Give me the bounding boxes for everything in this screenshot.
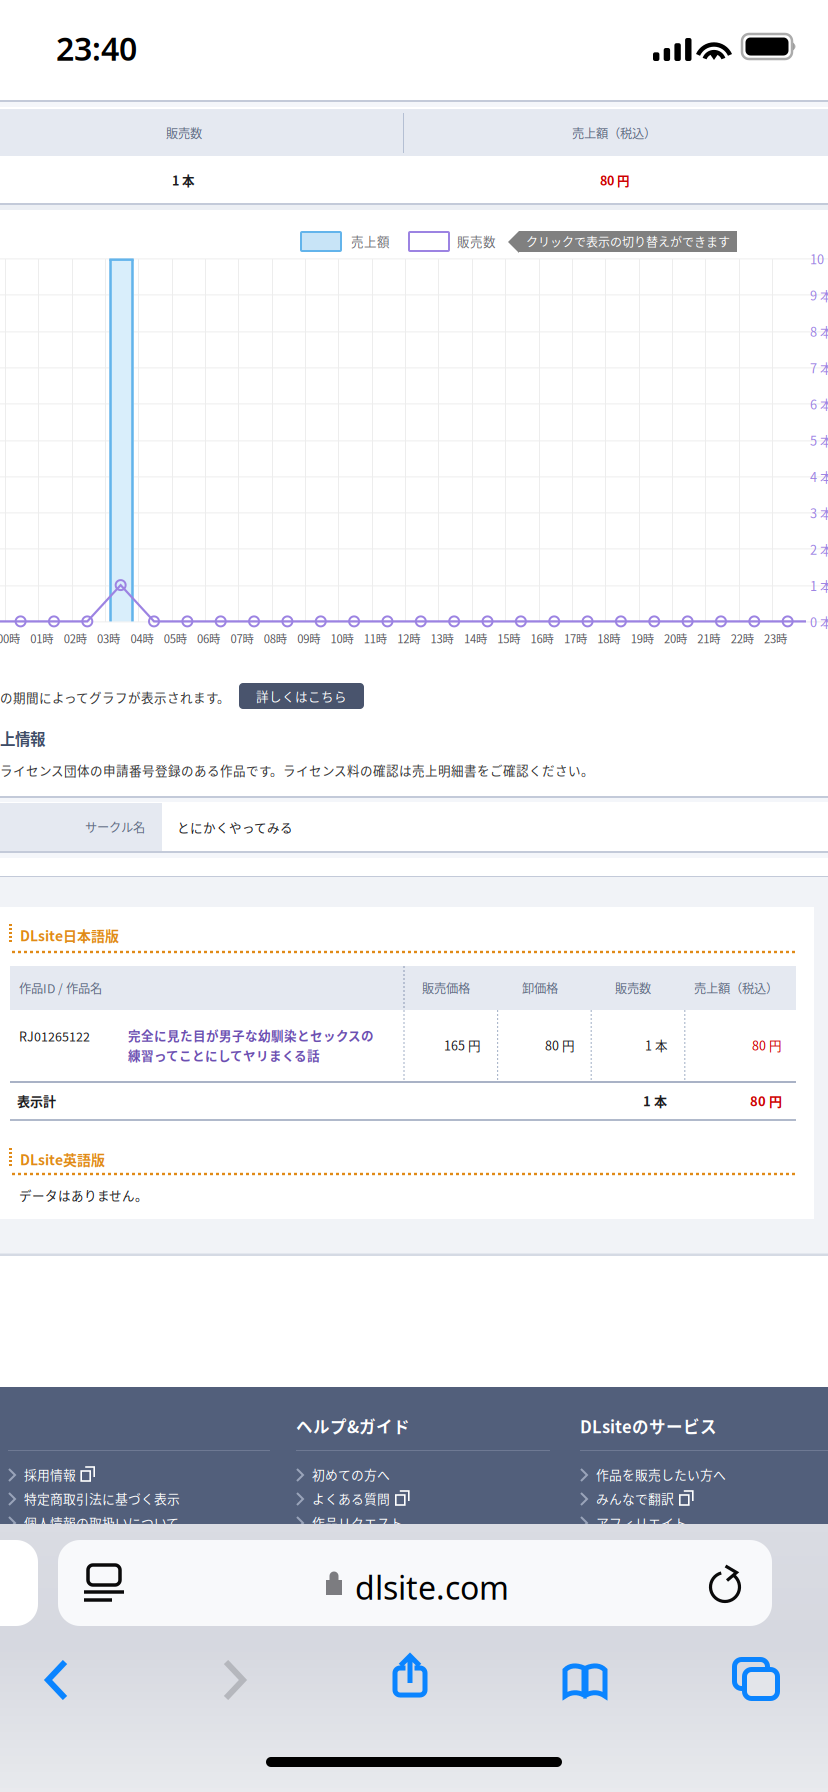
staticText: 22時 (731, 630, 754, 646)
staticText: 4 本 (810, 467, 828, 486)
button[interactable]: 初めての方へ (296, 1463, 550, 1487)
staticText: 09時 (297, 630, 320, 646)
staticText: 10時 (330, 630, 353, 646)
staticText: 02時 (64, 630, 87, 646)
staticText: 完全に見た目が男子な幼馴染とセックスの (128, 1026, 374, 1044)
staticText: 販売数 (166, 124, 202, 142)
staticText: 8 本 (810, 322, 828, 340)
staticText: 販売価格 (422, 979, 470, 997)
staticText: 05時 (164, 630, 187, 646)
staticText: データはありません。 (19, 1186, 148, 1204)
staticText: 卸価格 (522, 979, 558, 997)
button[interactable]: 個人情報の取扱いについて (8, 1511, 270, 1535)
staticText: アフィリエイト (596, 1513, 687, 1531)
button[interactable]: 特定商取引法に基づく表示 (8, 1487, 270, 1511)
staticText: 80 円 (600, 171, 630, 189)
staticText: 上情報 (0, 727, 45, 749)
staticText: 80 円 (545, 1036, 575, 1054)
staticText: 80 円 (752, 1036, 782, 1054)
staticText: みんなで翻訳 (596, 1489, 674, 1507)
button[interactable]: Forward (180, 1641, 290, 1717)
staticText: 08時 (264, 630, 287, 646)
staticText: 00時 (0, 630, 20, 646)
button[interactable]: みんなで翻訳 (580, 1487, 828, 1511)
staticText: 15時 (497, 630, 520, 646)
staticText: 1 本 (645, 1036, 668, 1054)
staticText: 作品リクエスト (312, 1513, 403, 1531)
staticText: dlsite.com (355, 1566, 509, 1608)
staticText: 165 円 (444, 1036, 481, 1054)
staticText: 売上額（税込） (694, 979, 778, 997)
staticText: 作品を販売したい方へ (596, 1465, 726, 1483)
staticText: 0 本 (810, 612, 828, 631)
staticText: 20時 (664, 630, 687, 646)
staticText: 23:40 (56, 27, 137, 69)
staticText: 5 本 (810, 431, 828, 449)
staticText: 06時 (197, 630, 220, 646)
staticText: DLsiteのサービス (580, 1414, 717, 1438)
staticText: 個人情報の取扱いについて (24, 1513, 179, 1531)
staticText: 80 円 (750, 1091, 782, 1110)
staticText: 01時 (30, 630, 53, 646)
staticText: 23時 (764, 630, 787, 646)
staticText: 13時 (431, 630, 454, 646)
button[interactable]: 採用情報 (8, 1463, 270, 1487)
staticText: 2 本 (810, 540, 828, 558)
staticText: 03時 (97, 630, 120, 646)
button[interactable]: 作品を販売したい方へ (580, 1463, 828, 1487)
staticText: 10 (810, 249, 824, 268)
staticText: はライセンス団体の申請番号登録のある作品です。ライセンス料の確認は売上明細書をご… (0, 761, 594, 779)
staticText: 表示計 (17, 1091, 56, 1110)
staticText: 04時 (130, 630, 153, 646)
staticText: 6 本 (810, 395, 828, 413)
staticText: 12時 (397, 630, 420, 646)
staticText: 販売数 (615, 979, 651, 997)
staticText: とにかくやってみる (177, 818, 293, 836)
button[interactable]: 作品リクエスト (296, 1511, 550, 1535)
button[interactable]: dlsite.com (58, 1540, 772, 1626)
staticText: 作品ID / 作品名 (19, 979, 102, 997)
staticText: 1 本 (810, 576, 828, 595)
staticText: 17時 (564, 630, 587, 646)
staticText: DLsite英語版 (20, 1149, 105, 1169)
staticText: 1 本 (172, 171, 195, 189)
staticText: 9 本 (810, 286, 828, 304)
staticText: クリックで表示の切り替えができます (526, 233, 730, 250)
staticText: 11時 (364, 630, 387, 646)
staticText: の期間によってグラフが表示されます。 (0, 688, 230, 706)
staticText: よくある質問 (312, 1489, 390, 1507)
button[interactable]: アフィリエイト (580, 1511, 828, 1535)
button[interactable]: Tabs (702, 1639, 812, 1715)
staticText: 3 本 (810, 503, 828, 522)
staticText: 14時 (464, 630, 487, 646)
button[interactable]: 詳しくはこちら (239, 683, 364, 709)
staticText: 7 本 (810, 358, 828, 377)
staticText: 07時 (230, 630, 253, 646)
staticText: 売上額（税込） (572, 124, 656, 142)
button[interactable]: よくある質問 (296, 1487, 550, 1511)
staticText: 特定商取引法に基づく表示 (24, 1489, 180, 1507)
staticText: 販売数 (457, 232, 496, 250)
staticText: DLsite日本語版 (20, 925, 119, 945)
button[interactable]: Back (2, 1641, 112, 1717)
staticText: 採用情報 (24, 1465, 76, 1483)
button[interactable]: Bookmarks (530, 1642, 640, 1718)
staticText: 16時 (531, 630, 554, 646)
staticText: 21時 (697, 630, 720, 646)
staticText: 19時 (631, 630, 654, 646)
staticText: ヘルプ&ガイド (296, 1414, 410, 1438)
staticText: 詳しくはこちら (256, 687, 347, 705)
staticText: RJ01265122 (19, 1027, 90, 1045)
staticText: 初めての方へ (312, 1465, 390, 1483)
staticText: 売上額 (351, 232, 390, 250)
staticText: 18時 (597, 630, 620, 646)
button[interactable]: Share (355, 1639, 465, 1715)
staticText: サークル名 (85, 818, 145, 836)
staticText: 1 本 (643, 1091, 667, 1110)
staticText: 練習ってことにしてヤリまくる話 (128, 1046, 320, 1064)
